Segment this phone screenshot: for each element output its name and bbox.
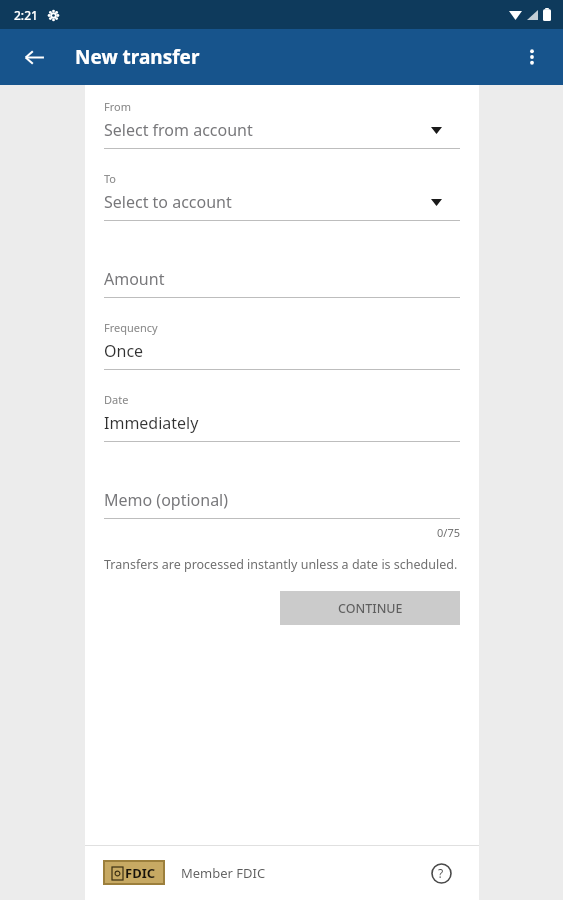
staticText: From xyxy=(104,99,131,114)
staticText: Frequency xyxy=(104,320,158,335)
staticText: Member FDIC xyxy=(181,864,266,882)
button[interactable]: More options xyxy=(509,34,555,80)
staticText: To xyxy=(104,171,117,186)
staticText: CONTINUE xyxy=(338,600,403,617)
staticText: 2:21 xyxy=(14,7,38,23)
staticText: Once xyxy=(104,340,144,362)
staticText: ? xyxy=(438,865,444,881)
staticText: Date xyxy=(104,392,129,407)
staticText: Transfers are processed instantly unless… xyxy=(104,556,458,573)
button[interactable]: Memo (optional) xyxy=(104,487,460,519)
staticText: Memo (optional) xyxy=(104,489,229,511)
button[interactable]: Back xyxy=(10,33,58,81)
staticText: Select from account xyxy=(104,119,253,141)
staticText: FDIC xyxy=(125,864,156,882)
button[interactable]: CONTINUE xyxy=(280,591,460,625)
staticText: Select to account xyxy=(104,191,232,213)
staticText: 0/75 xyxy=(437,525,460,540)
button[interactable]: Help xyxy=(421,853,461,893)
button[interactable]: Once xyxy=(104,338,460,370)
staticText: Amount xyxy=(104,268,165,290)
staticText: Immediately xyxy=(104,412,199,434)
button[interactable]: Select from account xyxy=(104,117,460,149)
staticText: New transfer xyxy=(75,44,200,70)
button[interactable]: Select to account xyxy=(104,189,460,221)
button[interactable]: Immediately xyxy=(104,410,460,442)
button[interactable]: Amount xyxy=(104,266,460,298)
